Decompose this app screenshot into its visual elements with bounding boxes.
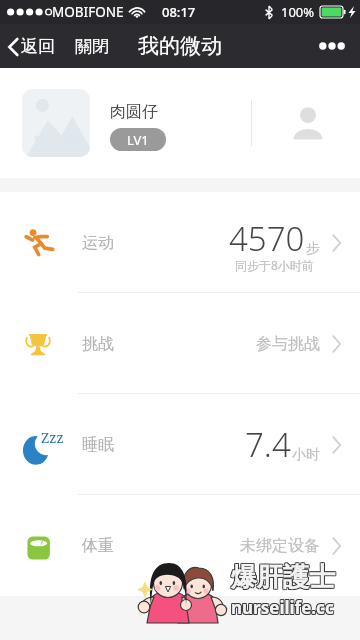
button[interactable]: 挑战 [0, 293, 360, 394]
staticText: 爆肝護士 [231, 562, 335, 595]
staticText: LV1 [127, 131, 149, 149]
staticText: 步 [306, 240, 320, 258]
staticText: 爆肝護士 [230, 561, 334, 594]
staticText: 体重 [82, 536, 114, 556]
staticText: 爆肝護士 [232, 561, 336, 594]
staticText: 挑战 [82, 334, 114, 354]
staticText: 爆肝護士 [232, 562, 336, 595]
staticText: MOBIFONE [52, 3, 124, 21]
staticText: 爆肝護士 [231, 561, 335, 594]
staticText: nurseilife.cc [230, 597, 333, 620]
staticText: 08:17 [162, 3, 196, 21]
staticText: 爆肝護士 [232, 560, 336, 593]
button[interactable]: 返回 [8, 36, 55, 57]
staticText: 返回 [21, 36, 55, 57]
button[interactable]: 体重 [0, 495, 360, 596]
staticText: nurseilife.cc [231, 596, 334, 619]
button[interactable]: Avatar [22, 89, 90, 157]
staticText: 100% [281, 3, 315, 21]
button[interactable]: 關閉 [75, 36, 109, 57]
button[interactable]: More options [310, 26, 354, 66]
staticText: nurseilife.cc [232, 596, 335, 619]
staticText: nurseilife.cc [232, 597, 335, 620]
staticText: 爆肝護士 [230, 560, 334, 593]
staticText: 未绑定设备 [240, 536, 320, 556]
staticText: 我的微动 [138, 33, 222, 59]
staticText: 参与挑战 [256, 334, 320, 354]
staticText: 爆肝護士 [231, 560, 335, 593]
staticText: 爆肝護士 [230, 562, 334, 595]
staticText: nurseilife.cc [231, 595, 334, 618]
button[interactable]: Friends [288, 103, 328, 143]
staticText: nurseilife.cc [232, 595, 335, 618]
button[interactable]: 运动 [0, 192, 360, 293]
button[interactable]: Zzz [0, 394, 360, 495]
staticText: 同步于8小时前 [235, 257, 314, 273]
staticText: 睡眠 [82, 435, 114, 455]
staticText: 4570 [229, 216, 305, 261]
staticText: 小时 [292, 446, 320, 464]
staticText: 7.4 [245, 422, 291, 467]
staticText: 运动 [82, 233, 114, 253]
staticText: nurseilife.cc [230, 596, 333, 619]
staticText: Zzz [41, 428, 64, 447]
staticText: nurseilife.cc [231, 597, 334, 620]
staticText: 肉圆仔 [110, 102, 158, 122]
staticText: nurseilife.cc [230, 595, 333, 618]
